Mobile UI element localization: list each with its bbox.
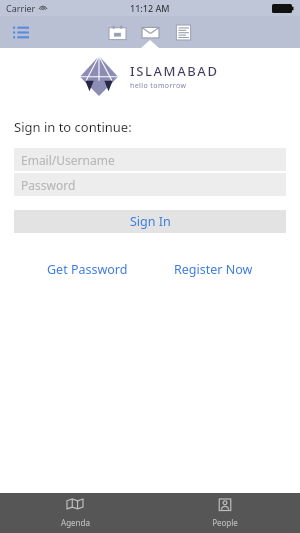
button[interactable]: Get Password <box>41 257 134 282</box>
button[interactable]: Email/Username <box>14 148 286 171</box>
staticText: Sign in to continue: <box>14 118 132 136</box>
staticText: Get Password <box>47 261 128 278</box>
staticText: Password <box>21 177 76 193</box>
staticText: Register Now <box>174 261 253 278</box>
button[interactable]: Documents <box>171 20 195 44</box>
staticText: Email/Username <box>21 152 115 168</box>
button[interactable]: Menu <box>8 19 34 45</box>
button[interactable]: Password <box>14 173 286 196</box>
staticText: ISLAMABAD <box>130 62 219 80</box>
staticText: Agenda <box>61 517 90 528</box>
button[interactable]: People <box>150 493 300 533</box>
button[interactable]: Sign In <box>14 210 286 233</box>
staticText: People <box>212 517 238 528</box>
button[interactable]: Calendar <box>105 20 129 44</box>
staticText: 11:12 AM <box>130 2 170 14</box>
staticText: hello tomorrow <box>130 81 187 91</box>
button[interactable]: Agenda <box>0 493 150 533</box>
button[interactable]: Mail <box>138 20 162 44</box>
button[interactable]: Register Now <box>168 257 259 282</box>
staticText: Carrier <box>6 2 36 14</box>
staticText: Sign In <box>130 213 171 230</box>
